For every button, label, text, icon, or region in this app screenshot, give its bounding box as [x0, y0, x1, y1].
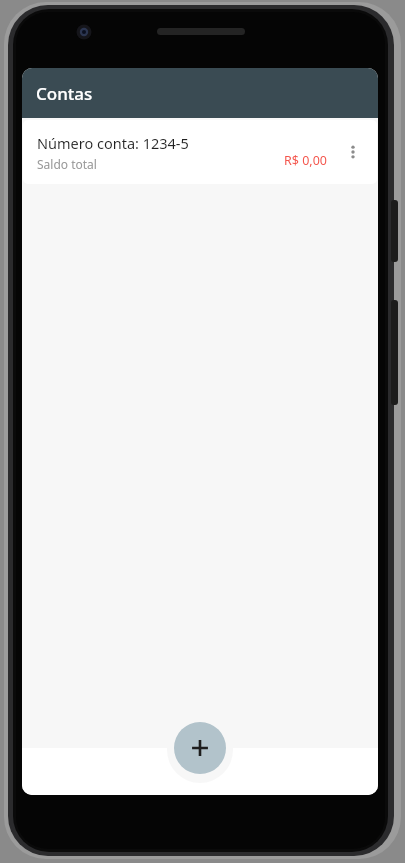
staticText: R$ 0,00	[284, 152, 327, 169]
button[interactable]: Número conta: 1234-5	[23, 120, 377, 184]
staticText: Número conta: 1234-5	[37, 133, 189, 153]
button[interactable]: Adicionar conta	[174, 722, 226, 774]
button[interactable]: Mais opções	[337, 136, 369, 168]
staticText: Saldo total	[37, 156, 97, 172]
staticText: Contas	[36, 82, 93, 105]
